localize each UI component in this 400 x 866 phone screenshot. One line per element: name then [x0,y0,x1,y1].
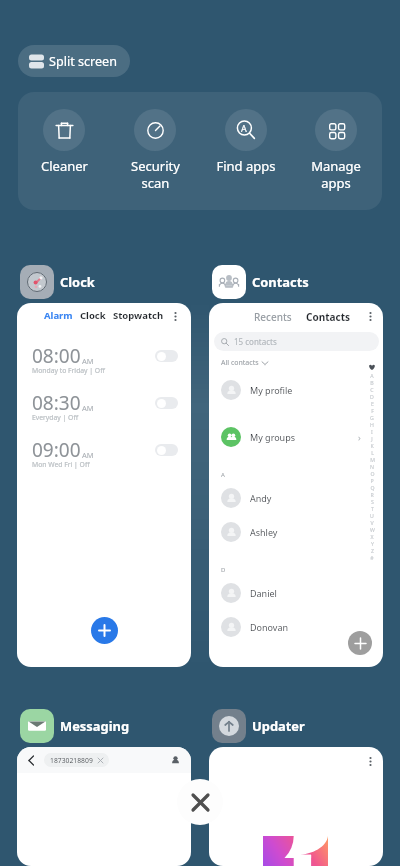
staticText: E [371,400,374,407]
staticText: L [371,449,374,456]
button[interactable]: Contact details [169,754,181,766]
button[interactable]: My groups [209,424,383,450]
staticText: Everyday | Off [32,413,79,422]
button[interactable]: Close all [177,779,223,825]
staticText: N [370,463,374,470]
staticText: T [371,505,374,512]
button[interactable]: Security scan [115,109,195,192]
staticText: Split screen [49,53,117,70]
staticText: Find apps [216,157,276,175]
button[interactable]: Ashley [209,519,383,545]
staticText: F [371,407,374,414]
button[interactable]: Cleaner [24,109,104,175]
staticText: I [371,428,373,435]
staticText: Donovan [250,621,289,633]
button[interactable]: Add contact [348,631,372,655]
staticText: 15 contacts [234,336,277,347]
button[interactable]: Donovan [209,614,383,640]
staticText: My profile [250,384,293,396]
staticText: AM [82,450,94,460]
staticText: O [370,470,375,477]
staticText: D [221,566,226,574]
staticText: Security scan [131,157,180,192]
button[interactable]: Clock [80,309,106,322]
button[interactable]: Back [25,754,37,766]
staticText: U [370,512,374,519]
staticText: Y [371,540,374,547]
button[interactable]: Messaging [20,709,130,743]
staticText: Messaging [60,717,130,735]
staticText: Manage apps [311,157,361,192]
staticText: 08:30 [32,390,81,416]
staticText: A [221,471,225,479]
button[interactable]: Clock [20,265,95,299]
button[interactable]: Stopwatch [113,309,164,322]
staticText: Ashley [250,526,278,538]
button[interactable]: Back [17,747,191,866]
button[interactable]: Daniel [209,580,383,606]
staticText: Cleaner [41,157,88,175]
staticText: Andy [250,492,272,504]
button[interactable]: Toggle alarm [155,397,178,409]
button[interactable]: More options [169,310,181,322]
button[interactable]: Alphabet index [367,364,377,561]
button[interactable]: 08:00 [17,343,191,379]
staticText: Clock [60,273,95,291]
staticText: D [370,393,374,400]
button[interactable]: 08:30 [17,390,191,426]
staticText: AM [82,356,94,366]
staticText: # [370,554,374,561]
staticText: W [370,526,375,533]
staticText: P [370,477,374,484]
button[interactable]: More options [364,755,376,767]
staticText: K [370,442,374,449]
button[interactable]: 09:00 [17,437,191,473]
staticText: R [370,491,374,498]
staticText: Mon Wed Fri | Off [32,460,90,469]
button[interactable]: Add alarm [91,617,118,644]
staticText: G [370,414,374,421]
staticText: Z [371,547,374,554]
button[interactable]: More options [209,747,383,866]
staticText: 08:00 [32,343,81,369]
button[interactable]: 15 contacts [214,332,379,351]
button[interactable]: Updater [212,709,305,743]
button[interactable]: Recents [209,303,383,667]
button[interactable]: Manage apps [296,109,376,192]
button[interactable]: Alarm [44,309,73,322]
staticText: All contacts [221,358,259,368]
button[interactable]: Alarm [17,303,191,667]
button[interactable]: Split screen [18,45,130,77]
staticText: AM [82,403,94,413]
button[interactable]: A [206,109,286,175]
staticText: B [370,379,374,386]
staticText: Daniel [250,587,277,599]
button[interactable]: Toggle alarm [155,444,178,456]
staticText: J [371,435,373,442]
staticText: C [370,386,374,393]
button[interactable]: Contacts [212,265,309,299]
staticText: S [371,498,374,505]
staticText: Recents [254,310,292,324]
staticText: V [370,519,374,526]
staticText: Q [370,484,375,491]
staticText: My groups [250,431,296,443]
staticText: 09:00 [32,437,81,463]
staticText: Contacts [252,273,309,291]
staticText: › [358,431,361,443]
staticText: Updater [252,717,305,735]
staticText: 18730218809 [50,756,93,765]
staticText: X [370,533,374,540]
staticText: Contacts [306,310,351,324]
button[interactable]: My profile [209,377,383,403]
button[interactable]: Andy [209,485,383,511]
staticText: A [370,372,374,379]
button[interactable]: More options [364,310,376,322]
staticText: A [241,122,247,134]
staticText: H [370,421,374,428]
staticText: M [370,456,375,463]
button[interactable]: 18730218809 [44,753,109,767]
button[interactable]: Toggle alarm [155,350,178,362]
staticText: Monday to Friday | Off [32,366,105,375]
